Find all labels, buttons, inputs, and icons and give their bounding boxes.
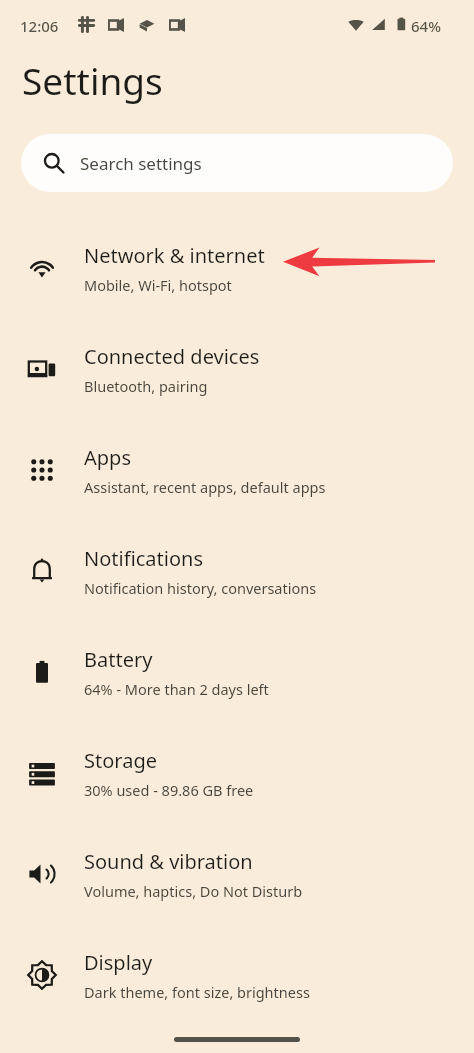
button[interactable]: Sound & vibration (0, 828, 474, 920)
staticText: Apps (84, 444, 131, 471)
staticText: Dark theme, font size, brightness (84, 982, 310, 1002)
staticText: Network & internet (84, 242, 265, 269)
staticText: Bluetooth, pairing (84, 376, 208, 396)
button[interactable]: Search settings (21, 134, 453, 192)
staticText: Assistant, recent apps, default apps (84, 477, 326, 497)
staticText: Notification history, conversations (84, 578, 317, 598)
button[interactable]: Battery (0, 626, 474, 718)
button[interactable]: Network & internet (0, 222, 474, 314)
staticText: Display (84, 949, 153, 976)
staticText: Storage (84, 747, 157, 774)
button[interactable]: Apps (0, 424, 474, 516)
staticText: Notifications (84, 545, 203, 572)
staticText: 30% used - 89.86 GB free (84, 780, 254, 800)
button[interactable]: Connected devices (0, 323, 474, 415)
staticText: Sound & vibration (84, 848, 253, 875)
staticText: 64% (411, 16, 441, 36)
staticText: Mobile, Wi-Fi, hotspot (84, 275, 232, 295)
staticText: 12:06 (20, 16, 59, 36)
button[interactable]: Display (0, 929, 474, 1021)
button[interactable]: Notifications (0, 525, 474, 617)
staticText: 64% - More than 2 days left (84, 679, 269, 699)
staticText: Connected devices (84, 343, 260, 370)
staticText: Search settings (80, 152, 202, 175)
staticText: Battery (84, 646, 153, 673)
staticText: Settings (22, 55, 163, 105)
button[interactable]: Storage (0, 727, 474, 819)
staticText: Volume, haptics, Do Not Disturb (84, 881, 303, 901)
